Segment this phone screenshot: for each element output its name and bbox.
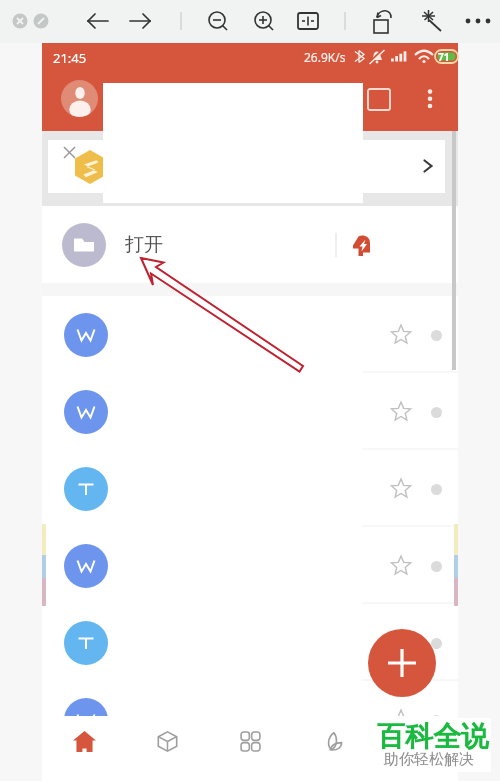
button[interactable]: More (421, 628, 451, 658)
button[interactable]: More (421, 320, 451, 350)
button[interactable]: Library (126, 716, 209, 766)
button[interactable]: Home (42, 716, 126, 766)
button[interactable]: AI assistant (345, 229, 377, 261)
button[interactable]: Favorite (42, 527, 458, 604)
staticText: 助你轻松解决 (384, 750, 474, 769)
staticText: 26.9K/s (304, 49, 346, 65)
button[interactable]: Favorite (42, 681, 458, 758)
staticText: 百科全说 (377, 719, 489, 754)
button[interactable]: Favorite (382, 470, 420, 508)
button[interactable]: 打开 (42, 206, 458, 283)
button[interactable]: Apps (209, 716, 292, 766)
staticText: 21:45 (53, 49, 87, 67)
staticText: 71 (438, 50, 450, 64)
button[interactable]: More (421, 474, 451, 504)
button[interactable]: Favorite (382, 316, 420, 354)
button[interactable]: Favorite (42, 450, 458, 527)
button[interactable]: Tools (292, 716, 375, 766)
button[interactable]: Favorite (382, 547, 420, 585)
button[interactable]: Favorite (42, 604, 458, 681)
button[interactable]: Favorite (42, 373, 458, 450)
button[interactable]: Favorite (382, 701, 420, 739)
button[interactable]: More (421, 551, 451, 581)
button[interactable] (48, 140, 445, 193)
button[interactable]: More options (411, 80, 448, 117)
staticText: 打开 (125, 233, 163, 257)
button[interactable]: Favorite (382, 393, 420, 431)
button[interactable]: More (421, 705, 451, 735)
button[interactable]: Favorite (42, 296, 458, 373)
button[interactable]: More (421, 397, 451, 427)
button[interactable]: Account (61, 80, 98, 117)
button[interactable]: Tabs (360, 80, 398, 118)
button[interactable]: Add (368, 629, 436, 697)
button[interactable]: Favorite (382, 624, 420, 662)
